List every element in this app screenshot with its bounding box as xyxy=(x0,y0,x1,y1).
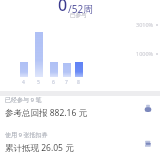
button[interactable]: 已经参与 9 笔 xyxy=(0,96,160,119)
staticText: 0 xyxy=(58,0,68,16)
staticText: 6 xyxy=(52,79,55,86)
other: Returns xyxy=(143,103,153,113)
staticText: 使用 9 张抵扣券 xyxy=(5,131,48,139)
staticText: 7 xyxy=(65,79,68,86)
staticText: 8 xyxy=(77,79,80,86)
staticText: 累计抵现 26.05 元 xyxy=(5,142,74,154)
staticText: 参考总回报 882.16 元 xyxy=(5,107,88,119)
staticText: 已经参与 9 笔 xyxy=(5,96,42,104)
staticText: 1000% xyxy=(136,50,154,57)
other: Coupons xyxy=(143,138,153,148)
staticText: 已参与 xyxy=(70,12,87,19)
button[interactable]: 使用 9 张抵扣券 xyxy=(0,131,160,154)
staticText: 4 xyxy=(22,79,25,86)
staticText: 5 xyxy=(37,79,40,86)
staticText: 3010% xyxy=(136,21,154,28)
staticText: /52周 xyxy=(68,2,94,16)
